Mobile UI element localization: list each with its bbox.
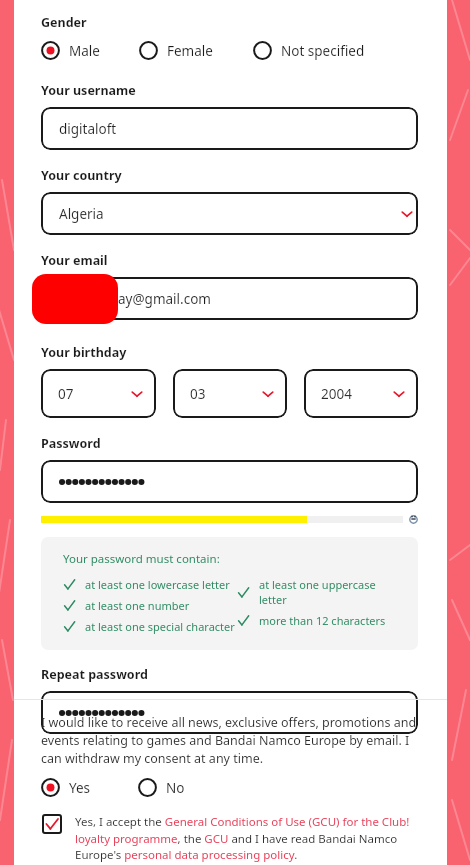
staticText: at least one number — [85, 598, 190, 613]
button[interactable]: ay@gmail.com — [41, 277, 418, 320]
button[interactable]: Algeria — [41, 192, 418, 235]
staticText: Male — [69, 42, 100, 60]
button[interactable]: Yes — [41, 778, 91, 797]
staticText: Yes, I accept the General Conditions of … — [75, 814, 418, 862]
staticText: digitaloft — [59, 120, 117, 138]
button[interactable]: 2004 — [304, 369, 418, 418]
button[interactable]: 07 — [41, 369, 156, 418]
staticText: Gender — [41, 14, 87, 31]
staticText: No — [166, 779, 185, 797]
other: Expand — [261, 387, 275, 401]
staticText: I would like to receive all news, exclus… — [41, 714, 418, 767]
button[interactable]: Accept terms — [42, 814, 62, 834]
staticText: at least one uppercase letter — [259, 577, 406, 607]
staticText: Your username — [41, 82, 136, 99]
staticText: at least one special character — [85, 619, 235, 634]
button[interactable]: Female — [139, 41, 213, 60]
staticText: at least one lowercase letter — [85, 577, 230, 592]
staticText: Your country — [41, 167, 122, 184]
staticText: ay@gmail.com — [118, 290, 211, 308]
staticText: 07 — [58, 385, 74, 403]
staticText: Yes — [69, 779, 91, 797]
other: Expand — [392, 387, 406, 401]
button[interactable] — [41, 691, 418, 734]
button[interactable]: No — [138, 778, 185, 797]
staticText: Female — [167, 42, 213, 60]
other: Expand — [130, 387, 144, 401]
staticText: Repeat password — [41, 666, 148, 683]
button[interactable]: 03 — [173, 369, 287, 418]
button[interactable] — [41, 460, 418, 503]
staticText: 03 — [190, 385, 206, 403]
staticText: Not specified — [281, 42, 365, 60]
staticText: Your birthday — [41, 344, 127, 361]
staticText: more than 12 characters — [259, 613, 386, 628]
staticText: 2004 — [321, 385, 352, 403]
staticText: Your password must contain: — [63, 551, 220, 567]
staticText: Password — [41, 435, 101, 452]
button[interactable]: Male — [41, 41, 100, 60]
other: Password strength — [409, 513, 418, 526]
button[interactable]: Not specified — [253, 41, 365, 60]
staticText: Algeria — [59, 205, 104, 223]
button[interactable]: digitaloft — [41, 107, 418, 150]
other: Expand — [400, 207, 414, 221]
staticText: Your email — [41, 252, 108, 269]
button[interactable]: Accept terms — [41, 814, 418, 862]
